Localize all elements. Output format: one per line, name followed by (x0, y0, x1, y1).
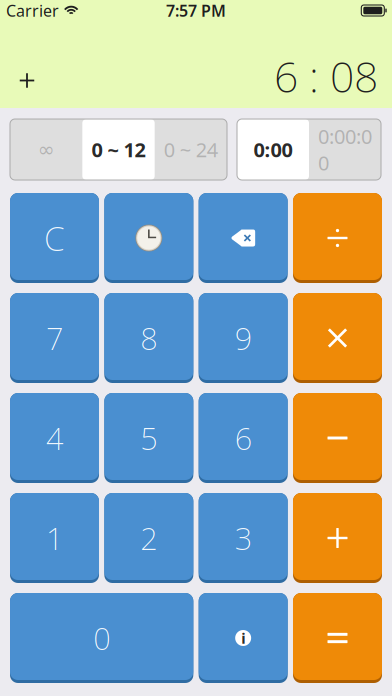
button[interactable]: 9 (199, 293, 288, 383)
staticText: 0:00 (253, 136, 292, 163)
staticText: 0 ~ 24 (164, 136, 218, 163)
button[interactable]: i (199, 593, 288, 683)
button[interactable]: 6 (199, 393, 288, 483)
button[interactable]: Equals (293, 593, 382, 683)
button[interactable]: 0 ~ 24 (155, 119, 227, 180)
button[interactable]: Plus (293, 493, 382, 583)
button[interactable]: 0:00 (237, 119, 309, 180)
button[interactable]: 1 (10, 493, 99, 583)
button[interactable]: 0 (10, 593, 193, 683)
staticText: 6 : 08 (274, 48, 378, 104)
staticText: 0:00:00 (318, 123, 372, 176)
button[interactable]: 7 (10, 293, 99, 383)
staticText: 4 (46, 418, 63, 458)
staticText: Carrier (6, 0, 59, 21)
button[interactable]: 0:00:00 (309, 119, 381, 180)
staticText: 8 (140, 318, 157, 358)
staticText: 0 ~ 12 (91, 136, 145, 163)
button[interactable]: 5 (104, 393, 193, 483)
button[interactable]: Divide (293, 193, 382, 283)
staticText: i (241, 628, 245, 648)
staticText: 7 (46, 318, 63, 358)
staticText: 9 (235, 318, 252, 358)
button[interactable]: Minus (293, 393, 382, 483)
button[interactable]: C (10, 193, 99, 283)
staticText: 3 (235, 518, 252, 558)
staticText: 6 (235, 418, 252, 458)
button[interactable]: ∞ (10, 119, 82, 180)
staticText: C (44, 216, 65, 260)
button[interactable]: Multiply (293, 293, 382, 383)
staticText: 5 (140, 418, 157, 458)
button[interactable]: 3 (199, 493, 288, 583)
button[interactable]: Add (0, 18, 50, 107)
staticText: 0 (93, 618, 110, 658)
staticText: 1 (46, 518, 63, 558)
staticText: ∞ (38, 138, 55, 161)
staticText: 7:57 PM (166, 0, 226, 21)
button[interactable] (104, 193, 193, 283)
staticText: 2 (140, 518, 157, 558)
button[interactable]: 0 ~ 12 (82, 119, 155, 180)
button[interactable] (199, 193, 288, 283)
button[interactable]: 2 (104, 493, 193, 583)
button[interactable]: 4 (10, 393, 99, 483)
button[interactable]: 8 (104, 293, 193, 383)
